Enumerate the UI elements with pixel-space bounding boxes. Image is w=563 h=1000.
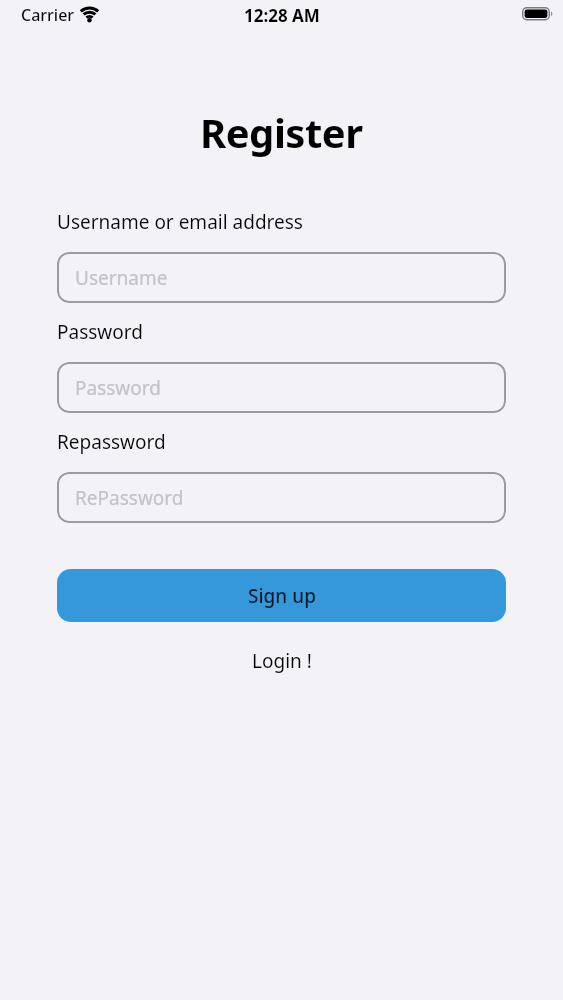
staticText: Register	[200, 105, 363, 159]
button[interactable]: Login !	[246, 646, 318, 676]
staticText: Carrier	[21, 4, 75, 26]
staticText: Password	[75, 375, 161, 401]
staticText: Repassword	[57, 429, 166, 455]
staticText: RePassword	[75, 485, 184, 511]
staticText: Username or email address	[57, 209, 303, 235]
button[interactable]: Sign up	[57, 569, 506, 622]
staticText: 12:28 AM	[244, 4, 320, 27]
staticText: Username	[75, 265, 168, 291]
button[interactable]: RePassword	[57, 472, 506, 523]
button[interactable]: Username	[57, 252, 506, 303]
button[interactable]: Password	[57, 362, 506, 413]
staticText: Sign up	[248, 583, 316, 609]
staticText: Login !	[252, 648, 312, 674]
staticText: Password	[57, 319, 143, 345]
